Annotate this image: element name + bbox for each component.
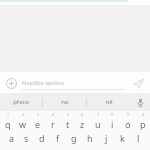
button[interactable]: 5 [60, 111, 75, 130]
staticText: no [61, 98, 69, 106]
staticText: g [71, 132, 77, 144]
staticText: 3 [37, 112, 40, 117]
staticText: 7 [97, 112, 100, 117]
button[interactable]: k [114, 130, 130, 149]
button[interactable]: 8 [105, 111, 120, 130]
staticText: q [5, 118, 11, 130]
staticText: p [140, 118, 146, 130]
staticText: a [9, 132, 15, 144]
staticText: 8 [111, 112, 114, 117]
staticText: u [95, 118, 101, 130]
button[interactable]: 4 [45, 111, 60, 130]
button[interactable]: přece [0, 93, 42, 111]
button[interactable]: a [4, 130, 19, 149]
button[interactable]: 7 [90, 111, 105, 130]
staticText: 9 [127, 112, 130, 117]
staticText: 1 [7, 112, 10, 117]
staticText: 5 [67, 112, 70, 117]
staticText: s [24, 132, 29, 144]
button[interactable]: l [130, 130, 146, 149]
staticText: ně [105, 98, 113, 106]
staticText: e [35, 118, 41, 130]
button[interactable]: 3 [30, 111, 45, 130]
staticText: o [125, 118, 131, 130]
button[interactable]: 6 [75, 111, 90, 130]
staticText: 6 [81, 112, 84, 117]
button[interactable]: Napište zprávu [22, 72, 126, 93]
staticText: přece [13, 98, 29, 106]
button[interactable]: no [43, 93, 86, 111]
staticText: j [105, 132, 108, 144]
button[interactable]: ně [87, 93, 130, 111]
staticText: k [120, 132, 125, 144]
button[interactable]: 2 [15, 111, 30, 130]
button[interactable]: 1 [0, 111, 15, 130]
button[interactable]: d [34, 130, 50, 149]
staticText: 4 [52, 112, 55, 117]
staticText: d [39, 132, 45, 144]
staticText: t [66, 118, 70, 130]
staticText: i [111, 118, 114, 130]
button[interactable]: Voice input [130, 93, 150, 111]
staticText: 0 [142, 112, 145, 117]
staticText: Napište zprávu [22, 79, 65, 87]
staticText: f [56, 132, 60, 144]
button[interactable]: g [66, 130, 82, 149]
button[interactable]: 0 [135, 111, 150, 130]
button[interactable]: s [19, 130, 34, 149]
button[interactable]: j [98, 130, 114, 149]
staticText: 2 [22, 112, 25, 117]
staticText: h [87, 132, 93, 144]
button[interactable]: Add attachment [4, 76, 18, 90]
staticText: r [51, 118, 55, 130]
staticText: l [137, 132, 140, 144]
button[interactable]: f [50, 130, 66, 149]
button[interactable]: 9 [120, 111, 135, 130]
staticText: z [80, 118, 85, 130]
button[interactable]: h [82, 130, 98, 149]
button[interactable]: Send [130, 75, 146, 91]
staticText: w [19, 118, 27, 130]
